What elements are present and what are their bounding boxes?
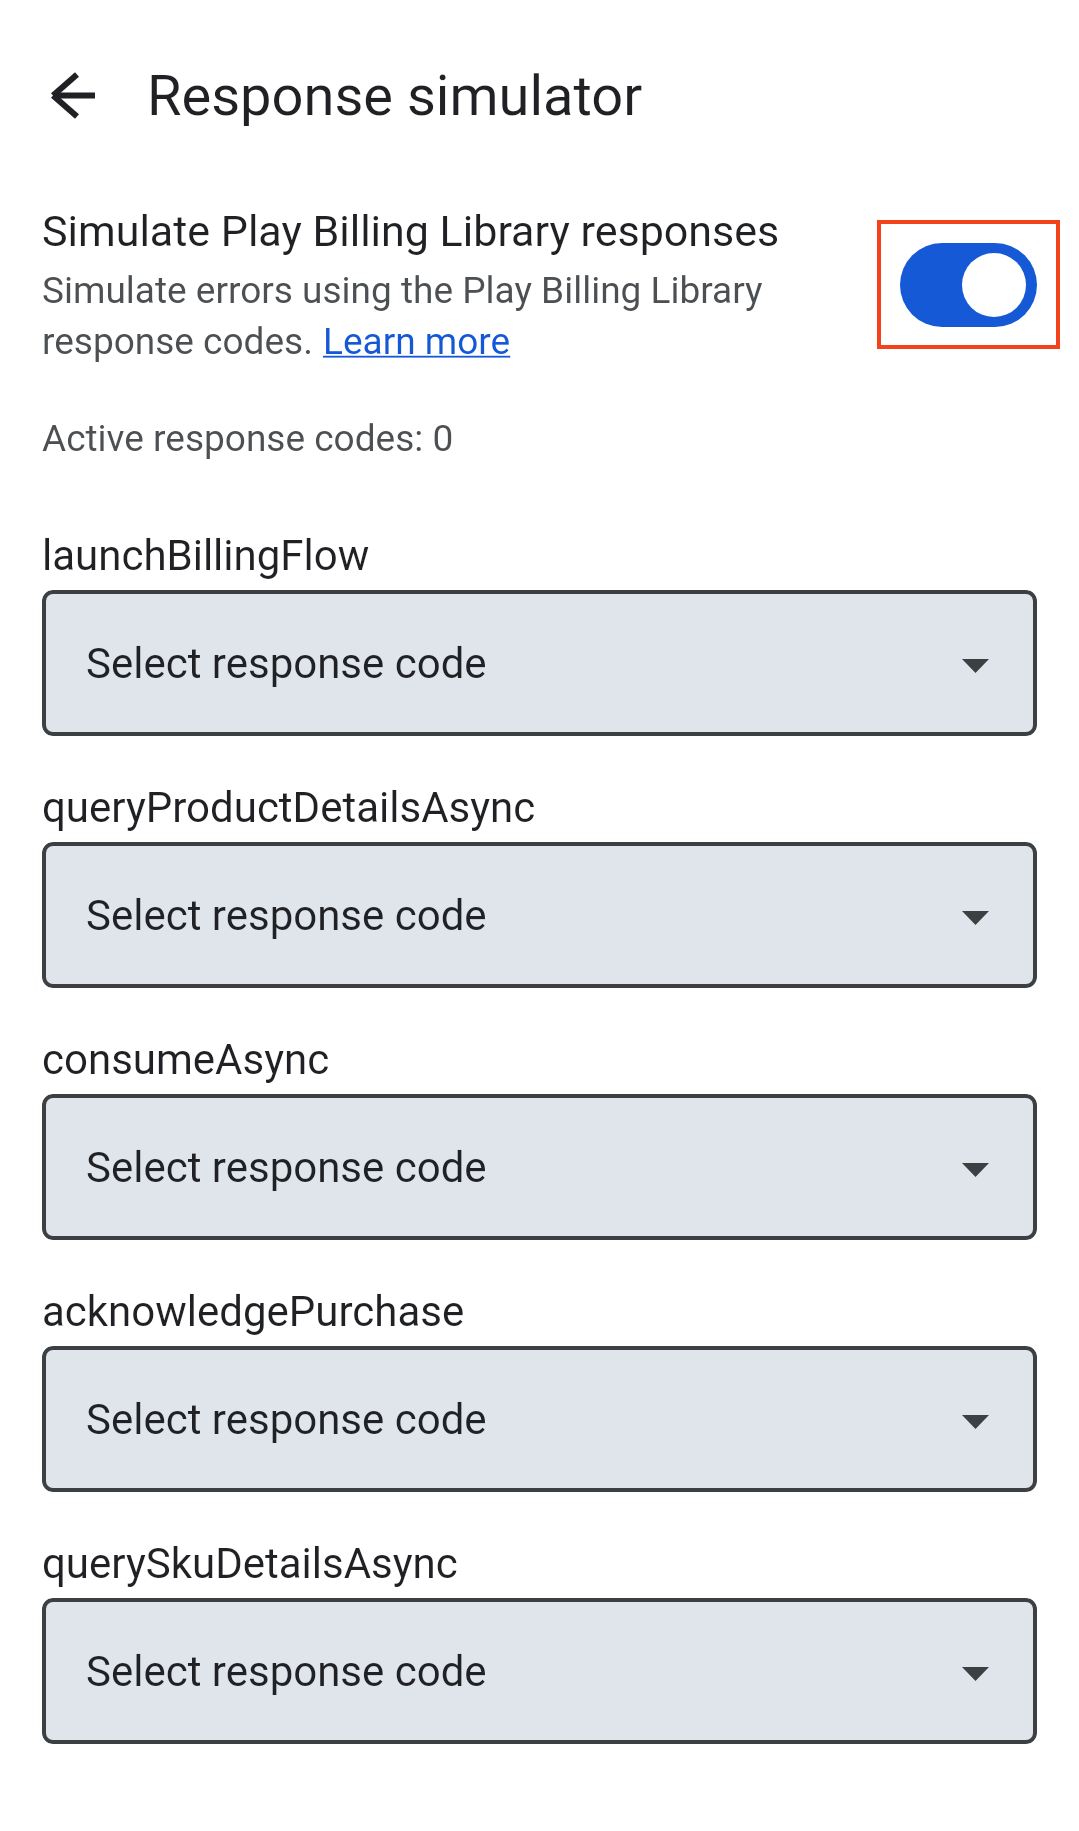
button[interactable]: Select response code — [42, 1346, 1037, 1492]
staticText: Select response code — [86, 891, 962, 940]
staticText: querySkuDetailsAsync — [42, 1539, 458, 1588]
staticText: response codes. — [42, 320, 323, 363]
button[interactable]: Select response code — [42, 842, 1037, 988]
button[interactable]: Select response code — [42, 1598, 1037, 1744]
staticText: queryProductDetailsAsync — [42, 783, 536, 832]
staticText: Select response code — [86, 1647, 962, 1696]
button[interactable]: Learn more — [323, 320, 511, 363]
staticText: launchBillingFlow — [42, 531, 370, 580]
staticText: Response simulator — [147, 63, 643, 129]
staticText: consumeAsync — [42, 1035, 330, 1084]
button[interactable]: Select response code — [42, 590, 1037, 736]
staticText: Simulate Play Billing Library responses — [42, 206, 780, 256]
button[interactable]: Select response code — [42, 1094, 1037, 1240]
staticText: Simulate errors using the Play Billing L… — [42, 269, 763, 312]
button[interactable] — [42, 62, 110, 130]
button[interactable] — [877, 220, 1060, 349]
staticText: Select response code — [86, 639, 962, 688]
staticText: Select response code — [86, 1143, 962, 1192]
staticText: Select response code — [86, 1395, 962, 1444]
staticText: acknowledgePurchase — [42, 1287, 465, 1336]
staticText: Active response codes: 0 — [42, 417, 454, 460]
